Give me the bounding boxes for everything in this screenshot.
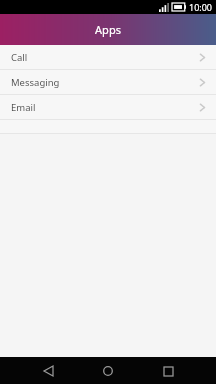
other: Open: [199, 52, 206, 63]
button[interactable]: Call: [0, 45, 216, 69]
button[interactable]: Home: [96, 359, 120, 383]
button[interactable]: Back: [36, 359, 60, 383]
button[interactable]: Messaging: [0, 70, 216, 94]
staticText: Call: [11, 51, 28, 64]
button[interactable]: Recent apps: [156, 359, 180, 383]
button[interactable]: Email: [0, 95, 216, 119]
staticText: Apps: [95, 22, 121, 37]
staticText: Email: [11, 101, 36, 114]
staticText: 10:00: [189, 1, 213, 13]
staticText: Messaging: [11, 76, 60, 89]
other: Open: [199, 102, 206, 113]
other: Open: [199, 77, 206, 88]
